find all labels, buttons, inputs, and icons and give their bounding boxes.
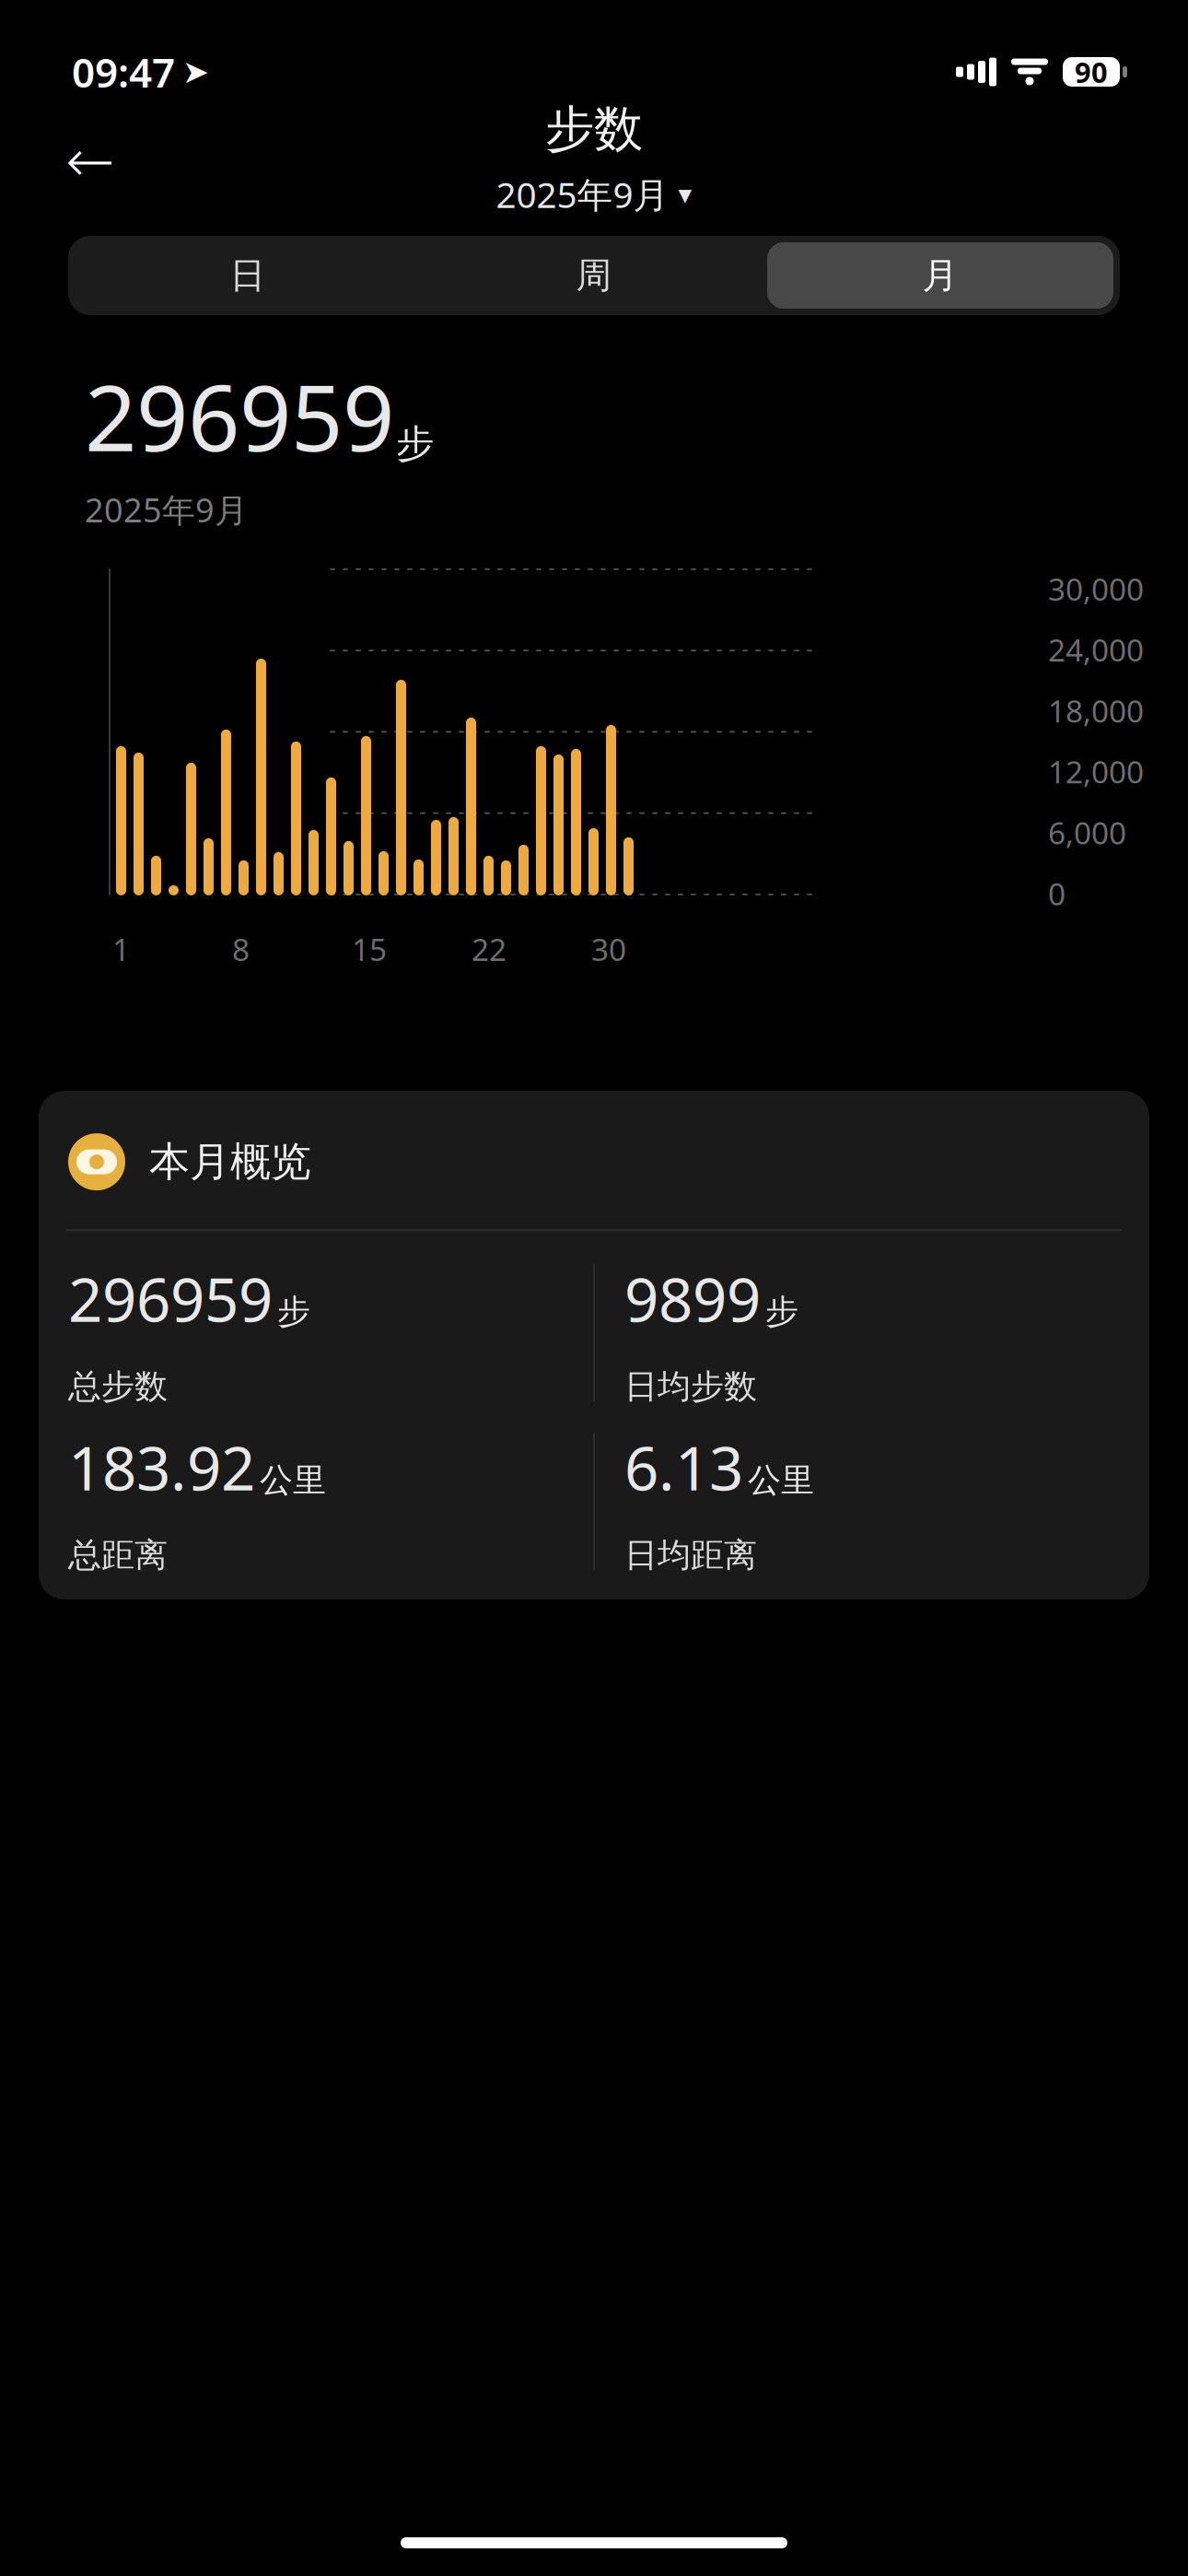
button[interactable]: 日	[75, 242, 421, 309]
staticText: 步数	[545, 99, 643, 159]
staticText: 15	[352, 929, 387, 969]
staticText: 步	[396, 420, 434, 467]
staticText: 22	[472, 929, 507, 969]
staticText: 日均距离	[624, 1535, 757, 1575]
staticText: 18,000	[1048, 690, 1144, 731]
staticText: 90	[1075, 53, 1108, 91]
staticText: 本月概览	[149, 1137, 311, 1187]
staticText: 周	[576, 254, 612, 297]
staticText: 总步数	[68, 1366, 168, 1407]
button[interactable]: 月	[767, 242, 1113, 309]
staticText: 30	[591, 929, 626, 969]
staticText: 296959	[68, 1259, 273, 1339]
button[interactable]: 2025年9月	[487, 165, 701, 223]
staticText: 30,000	[1048, 568, 1144, 609]
staticText: 月	[922, 254, 958, 297]
staticText: ←	[65, 128, 115, 195]
staticText: 2025年9月	[85, 487, 248, 531]
button[interactable]: 周	[421, 242, 767, 309]
staticText: ➤	[182, 54, 209, 90]
staticText: ▾	[678, 179, 692, 210]
staticText: 日	[230, 254, 266, 297]
staticText: 9899	[624, 1259, 761, 1339]
staticText: 公里	[748, 1460, 814, 1501]
staticText: 步	[765, 1291, 798, 1332]
staticText: 公里	[260, 1460, 326, 1501]
staticText: 0	[1048, 873, 1066, 914]
staticText: 6.13	[624, 1427, 743, 1507]
staticText: 183.92	[68, 1427, 255, 1507]
staticText: 09:47	[72, 45, 175, 99]
staticText: 步	[277, 1291, 310, 1332]
staticText: 2025年9月	[496, 171, 669, 218]
staticText: 1	[112, 929, 130, 969]
staticText: 296959	[85, 356, 394, 476]
staticText: 8	[232, 929, 250, 969]
staticText: 6,000	[1048, 812, 1126, 853]
staticText: 总距离	[68, 1535, 168, 1575]
button[interactable]: 返回	[46, 117, 134, 205]
staticText: 12,000	[1048, 751, 1144, 792]
staticText: 日均步数	[624, 1366, 757, 1407]
staticText: 24,000	[1048, 629, 1144, 670]
